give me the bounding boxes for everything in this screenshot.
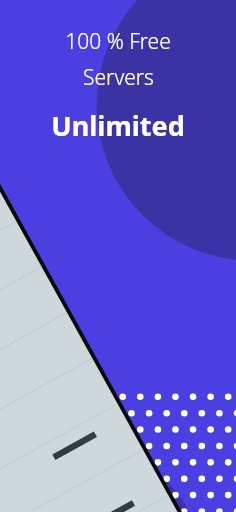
staticText: Unlimited xyxy=(51,107,185,144)
staticText: 100 % Free xyxy=(65,27,171,56)
button[interactable]: Free unlimited servers promo xyxy=(0,0,236,512)
staticText: Servers xyxy=(83,63,154,92)
